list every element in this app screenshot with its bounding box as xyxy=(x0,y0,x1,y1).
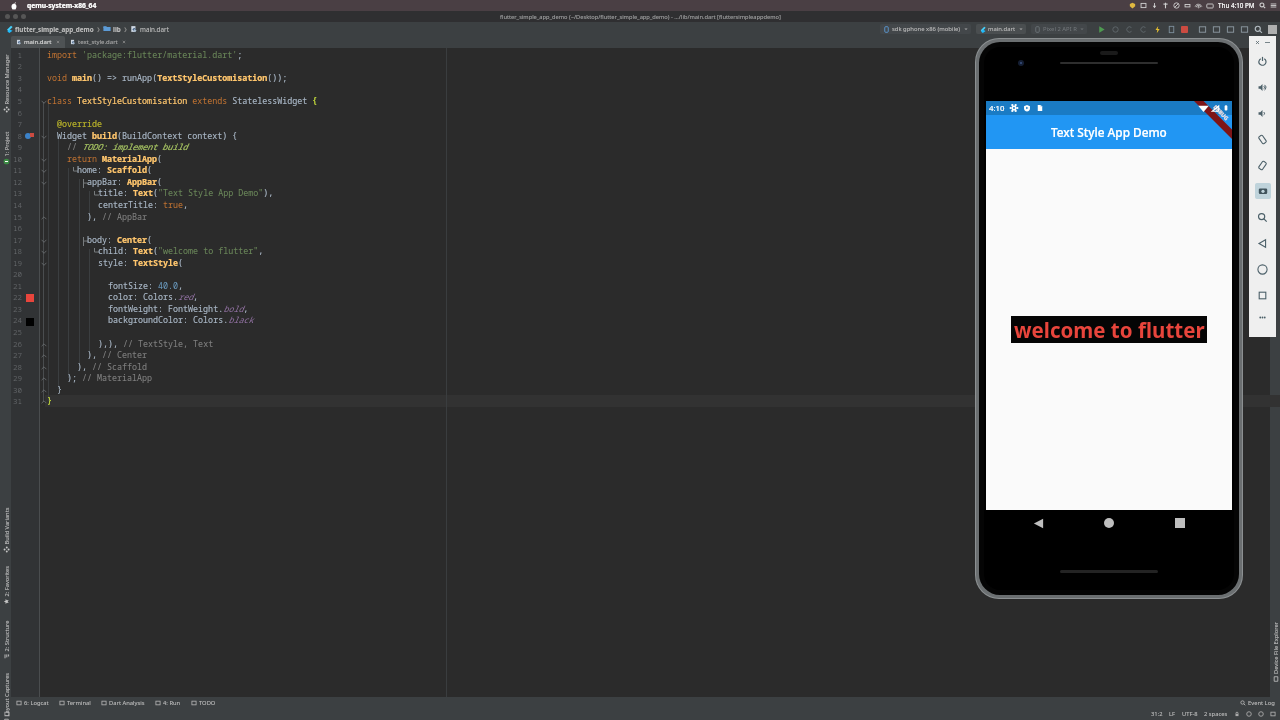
staticText: ), // AppBar xyxy=(87,211,148,222)
staticText: import 'package:flutter/material.dart'; xyxy=(47,49,243,60)
button[interactable]: Flutter hot reload xyxy=(1153,25,1162,34)
staticText: title: Text("Text Style App Demo"), xyxy=(98,187,274,198)
button[interactable]: main.dart xyxy=(16,36,60,48)
button[interactable]: Apple menu xyxy=(10,2,18,10)
button[interactable]: main.dart xyxy=(140,25,169,34)
staticText: backgroundColor: Colors.black xyxy=(108,314,254,325)
button[interactable]: Debug xyxy=(1111,25,1120,34)
staticText: 4:10 xyxy=(989,103,1005,114)
button[interactable]: Pixel 2 API R xyxy=(1034,25,1084,33)
button[interactable]: 1: Project xyxy=(0,125,11,171)
staticText: Build Variants xyxy=(2,507,10,544)
staticText: home: Scaffold( xyxy=(77,164,153,175)
button[interactable]: Device File Explorer xyxy=(1270,615,1280,690)
staticText: lib xyxy=(113,25,121,34)
staticText: 30 xyxy=(2,385,22,395)
staticText: DEBUG xyxy=(1212,103,1231,122)
button[interactable]: Terminal xyxy=(59,699,91,707)
staticText: 16 xyxy=(2,223,22,233)
staticText: flutter_simple_app_demo xyxy=(15,25,94,34)
button[interactable]: Build Variants xyxy=(0,502,11,558)
staticText: 28 xyxy=(2,362,22,372)
staticText: ), // Center xyxy=(87,349,148,360)
button[interactable]: lib xyxy=(113,25,121,34)
button[interactable]: rotl xyxy=(1249,126,1276,152)
staticText: body: Center( xyxy=(87,234,153,245)
button[interactable]: 2: Favorites xyxy=(0,560,11,610)
button[interactable]: back xyxy=(1249,230,1276,256)
staticText: 12 xyxy=(2,177,22,187)
staticText: text_style.dart xyxy=(78,38,118,46)
staticText: Dart Analysis xyxy=(109,699,145,707)
staticText: 2 xyxy=(2,61,22,71)
button[interactable]: TODO xyxy=(191,699,216,707)
button[interactable]: Layout Captures xyxy=(0,668,11,720)
staticText: appBar: AppBar( xyxy=(87,176,163,187)
button[interactable]: Hot restart xyxy=(1139,25,1148,34)
button[interactable]: volup xyxy=(1249,74,1276,100)
button[interactable]: text_style.dart xyxy=(70,36,126,48)
button[interactable]: Recents xyxy=(1170,513,1190,533)
staticText: 10 xyxy=(2,154,22,164)
button[interactable]: 2: Structure xyxy=(0,614,11,664)
button[interactable]: Run xyxy=(1097,25,1106,34)
staticText: 15 xyxy=(2,212,22,222)
staticText: TODO xyxy=(199,699,216,707)
staticText: 14 xyxy=(2,200,22,210)
button[interactable]: 4: Run xyxy=(155,699,181,707)
button[interactable]: rotr xyxy=(1249,152,1276,178)
button[interactable]: cam xyxy=(1249,178,1276,204)
staticText: 24 xyxy=(2,315,22,325)
staticText: 26 xyxy=(2,339,22,349)
staticText: 18 xyxy=(2,246,22,256)
staticText: return MaterialApp( xyxy=(67,153,163,164)
button[interactable]: flutter_simple_app_demo xyxy=(15,25,94,34)
button[interactable]: more xyxy=(1249,308,1276,326)
staticText: @override xyxy=(57,118,103,129)
button[interactable]: Profiler xyxy=(1226,25,1235,34)
staticText: 6: Logcat xyxy=(24,699,49,707)
button[interactable]: 6: Logcat xyxy=(16,699,49,707)
button[interactable]: Home xyxy=(1099,513,1119,533)
button[interactable]: power xyxy=(1249,48,1276,74)
staticText: fontSize: 40.0, xyxy=(108,280,184,291)
staticText: Device File Explorer xyxy=(1272,622,1280,674)
button[interactable]: Stop xyxy=(1181,26,1188,33)
other: Minimize xyxy=(1265,40,1270,45)
staticText: welcome to flutter xyxy=(1014,316,1205,343)
button[interactable]: Dart Analysis xyxy=(101,699,145,707)
button[interactable]: Device manager xyxy=(1198,25,1207,34)
button[interactable]: main.dart xyxy=(979,25,1023,33)
staticText: flutter_simple_app_demo (~/Desktop/flutt… xyxy=(500,13,781,21)
button[interactable]: Back xyxy=(1028,513,1048,533)
staticText: 29 xyxy=(2,373,22,383)
button[interactable]: voldn xyxy=(1249,100,1276,126)
button[interactable]: Text Style App Demo xyxy=(986,115,1232,149)
button[interactable]: Layout inspector xyxy=(1212,25,1221,34)
staticText: Event Log xyxy=(1248,699,1275,707)
staticText: color: Colors.red, xyxy=(108,291,199,302)
staticText: 6 xyxy=(2,108,22,118)
staticText: fontWeight: FontWeight.bold, xyxy=(108,303,249,314)
button[interactable]: sdk gphone x86 (mobile) xyxy=(883,25,968,33)
button[interactable]: SDK manager xyxy=(1240,25,1249,34)
staticText: } xyxy=(47,395,53,406)
staticText: sdk gphone x86 (mobile) xyxy=(892,25,961,33)
button[interactable]: Hot reload xyxy=(1125,25,1134,34)
staticText: 9 xyxy=(2,142,22,152)
button[interactable]: zoom xyxy=(1249,204,1276,230)
staticText: child: Text("welcome to flutter", xyxy=(98,245,264,256)
staticText: Layout Captures xyxy=(2,672,10,716)
button[interactable]: Search xyxy=(1254,25,1263,34)
button[interactable]: Resource Manager xyxy=(0,48,11,118)
staticText: main.dart xyxy=(988,25,1016,33)
staticText: ),), // TextStyle, Text xyxy=(98,338,214,349)
button[interactable]: recent xyxy=(1249,282,1276,308)
staticText: 19 xyxy=(2,258,22,268)
button[interactable]: home xyxy=(1249,256,1276,282)
staticText: main.dart xyxy=(140,25,169,34)
button[interactable]: Open DevTools xyxy=(1167,25,1176,34)
staticText: 1: Project xyxy=(2,131,10,156)
staticText: 22 xyxy=(2,292,22,302)
